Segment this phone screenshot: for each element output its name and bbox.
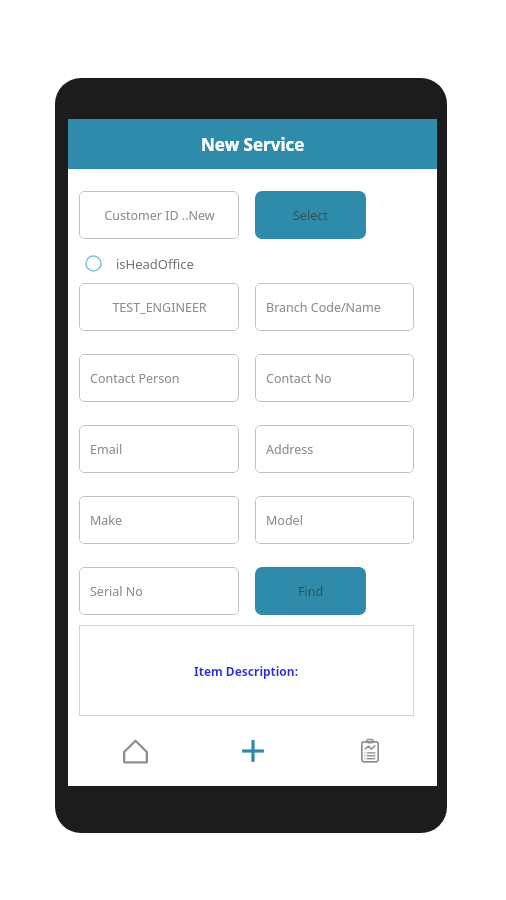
button[interactable]: Item Description: — [79, 625, 414, 716]
staticText: Email — [90, 441, 123, 458]
staticText: Address — [266, 441, 314, 458]
staticText: Find — [298, 583, 324, 600]
staticText: Customer ID ..New — [104, 207, 215, 224]
button[interactable]: Serial No — [79, 567, 239, 615]
button[interactable]: Branch Code/Name — [255, 283, 414, 331]
button[interactable]: Contact Person — [79, 354, 239, 402]
button[interactable]: Customer ID ..New — [79, 191, 239, 239]
button[interactable]: Add new service — [203, 721, 303, 781]
staticText: Contact Person — [90, 370, 180, 387]
staticText: Branch Code/Name — [266, 299, 381, 316]
staticText: New Service — [201, 133, 305, 156]
button[interactable]: Model — [255, 496, 414, 544]
staticText: Contact No — [266, 370, 332, 387]
button[interactable]: Contact No — [255, 354, 414, 402]
button[interactable]: Make — [79, 496, 239, 544]
button[interactable]: Find — [255, 567, 366, 615]
staticText: Serial No — [90, 583, 143, 600]
staticText: isHeadOffice — [116, 255, 194, 273]
button[interactable]: Address — [255, 425, 414, 473]
staticText: Select — [293, 207, 328, 224]
button[interactable]: isHeadOffice — [79, 248, 194, 279]
staticText: TEST_ENGINEER — [112, 299, 207, 316]
staticText: Item Description: — [194, 663, 299, 679]
button[interactable]: Reports — [320, 721, 420, 781]
button[interactable]: Select — [255, 191, 366, 239]
staticText: Model — [266, 512, 303, 529]
staticText: Make — [90, 512, 123, 529]
button[interactable]: TEST_ENGINEER — [79, 283, 239, 331]
button[interactable]: Home — [85, 721, 185, 781]
button[interactable]: Email — [79, 425, 239, 473]
